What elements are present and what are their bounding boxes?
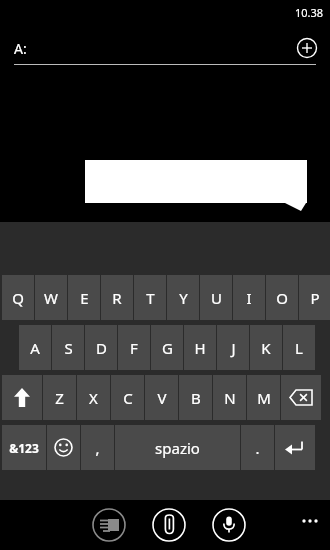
- button[interactable]: R: [101, 275, 133, 320]
- staticText: X: [89, 388, 98, 408]
- button[interactable]: U: [200, 275, 232, 320]
- button[interactable]: Shift: [2, 375, 42, 420]
- button[interactable]: A:: [0, 32, 330, 64]
- staticText: A:: [14, 39, 27, 58]
- button[interactable]: J: [217, 325, 249, 370]
- staticText: F: [130, 338, 138, 358]
- staticText: K: [261, 338, 271, 358]
- button[interactable]: I: [233, 275, 265, 320]
- button[interactable]: Send: [92, 508, 126, 542]
- button[interactable]: Enter: [275, 425, 315, 470]
- staticText: ,: [95, 438, 100, 458]
- button[interactable]: Attach: [152, 508, 186, 542]
- staticText: .: [255, 438, 260, 458]
- button[interactable]: More options: [290, 505, 330, 545]
- button[interactable]: M: [247, 375, 280, 420]
- staticText: N: [224, 388, 236, 408]
- button[interactable]: A: [19, 325, 51, 370]
- button[interactable]: Add recipient: [294, 35, 320, 61]
- staticText: M: [257, 388, 271, 408]
- button[interactable]: E: [68, 275, 100, 320]
- button[interactable]: ,: [81, 425, 114, 470]
- staticText: S: [64, 338, 73, 358]
- staticText: L: [295, 338, 303, 358]
- button[interactable]: spazio: [115, 425, 240, 470]
- staticText: H: [194, 338, 206, 358]
- staticText: A: [30, 338, 40, 358]
- button[interactable]: N: [213, 375, 246, 420]
- button[interactable]: .: [241, 425, 274, 470]
- button[interactable]: Z: [43, 375, 76, 420]
- staticText: E: [80, 288, 89, 308]
- button[interactable]: Q: [2, 275, 34, 320]
- button[interactable]: B: [179, 375, 212, 420]
- staticText: D: [96, 338, 107, 358]
- button[interactable]: H: [184, 325, 216, 370]
- staticText: 10.38: [295, 5, 324, 20]
- button[interactable]: O: [266, 275, 298, 320]
- staticText: B: [191, 388, 201, 408]
- button[interactable]: S: [52, 325, 84, 370]
- staticText: &123: [9, 440, 39, 456]
- staticText: O: [276, 288, 288, 308]
- button[interactable]: &123: [2, 425, 46, 470]
- staticText: W: [44, 288, 58, 308]
- button[interactable]: G: [151, 325, 183, 370]
- button[interactable]: F: [118, 325, 150, 370]
- button[interactable]: L: [283, 325, 315, 370]
- button[interactable]: P: [299, 275, 330, 320]
- button[interactable]: C: [111, 375, 144, 420]
- button[interactable]: Backspace: [281, 375, 321, 420]
- staticText: V: [157, 388, 167, 408]
- button[interactable]: K: [250, 325, 282, 370]
- button[interactable]: T: [134, 275, 166, 320]
- staticText: R: [112, 288, 122, 308]
- staticText: U: [211, 288, 222, 308]
- button[interactable]: X: [77, 375, 110, 420]
- staticText: Q: [12, 288, 24, 308]
- button[interactable]: W: [35, 275, 67, 320]
- staticText: P: [310, 288, 320, 308]
- staticText: spazio: [155, 438, 200, 458]
- staticText: J: [231, 338, 236, 358]
- button[interactable]: Y: [167, 275, 199, 320]
- button[interactable]: V: [145, 375, 178, 420]
- staticText: Y: [179, 288, 188, 308]
- staticText: I: [246, 288, 252, 308]
- staticText: C: [123, 388, 133, 408]
- button[interactable]: D: [85, 325, 117, 370]
- staticText: T: [146, 288, 155, 308]
- staticText: G: [162, 338, 173, 358]
- button[interactable]: Emoji: [47, 425, 80, 470]
- button[interactable]: Voice: [212, 508, 246, 542]
- staticText: Z: [55, 388, 64, 408]
